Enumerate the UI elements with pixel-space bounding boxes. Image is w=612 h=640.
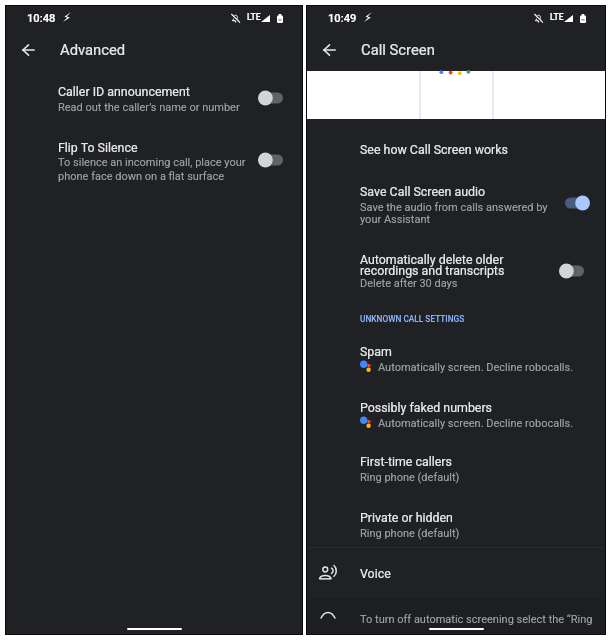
staticText: your Assistant [360, 213, 431, 226]
button[interactable]: Off [258, 90, 284, 106]
staticText: Automatically delete older [360, 252, 504, 267]
button[interactable]: Back [13, 35, 43, 65]
button[interactable]: On [564, 195, 590, 211]
staticText: UNKNOWN CALL SETTINGS [360, 314, 465, 324]
staticText: Automatically screen. Decline robocalls. [378, 417, 574, 430]
button[interactable]: Automatically delete older [307, 249, 605, 301]
staticText: To silence an incoming call, place your [58, 156, 246, 169]
staticText: phone face down on a flat surface [58, 170, 225, 183]
button[interactable]: Possibly faked numbers [307, 397, 605, 431]
staticText: Automatically screen. Decline robocalls. [378, 361, 574, 374]
staticText: 10:49 [328, 12, 357, 25]
staticText: Flip To Silence [58, 140, 138, 155]
button[interactable]: Off [258, 152, 284, 168]
button[interactable]: Save Call Screen audio [307, 180, 605, 232]
staticText: Call Screen [361, 41, 435, 58]
staticText: Ring phone (default) [360, 527, 460, 540]
button[interactable]: Voice [307, 548, 605, 598]
button[interactable]: Flip To Silence [6, 136, 302, 190]
other: Voice [319, 565, 336, 579]
staticText: First-time callers [360, 454, 452, 469]
staticText: LTE [247, 12, 261, 22]
button[interactable]: Back [314, 35, 344, 65]
staticText: Save the audio from calls answered by [360, 201, 548, 214]
button[interactable]: Caller ID announcement [6, 80, 302, 120]
staticText: Possibly faked numbers [360, 400, 493, 415]
staticText: Caller ID announcement [58, 84, 190, 99]
button[interactable]: Spam [307, 341, 605, 375]
staticText: See how Call Screen works [360, 142, 508, 157]
staticText: Private or hidden [360, 510, 453, 525]
staticText: 10:48 [27, 12, 56, 25]
staticText: Spam [360, 344, 392, 359]
staticText: Read out the caller’s name or number [58, 101, 240, 114]
staticText: Ring phone (default) [360, 471, 460, 484]
staticText: recordings and transcripts [360, 263, 505, 278]
staticText: Advanced [60, 41, 126, 58]
button[interactable]: First-time callers [307, 451, 605, 491]
staticText: LTE [550, 12, 564, 22]
staticText: To turn off automatic screening select t… [360, 613, 593, 626]
button[interactable]: See how Call Screen works [307, 136, 605, 164]
staticText: Voice [360, 566, 391, 581]
button[interactable]: Off [559, 263, 585, 279]
button[interactable]: UNKNOWN CALL SETTINGS [307, 311, 605, 333]
staticText: Delete after 30 days [360, 277, 458, 290]
button[interactable]: Private or hidden [307, 507, 605, 547]
staticText: Save Call Screen audio [360, 184, 486, 199]
